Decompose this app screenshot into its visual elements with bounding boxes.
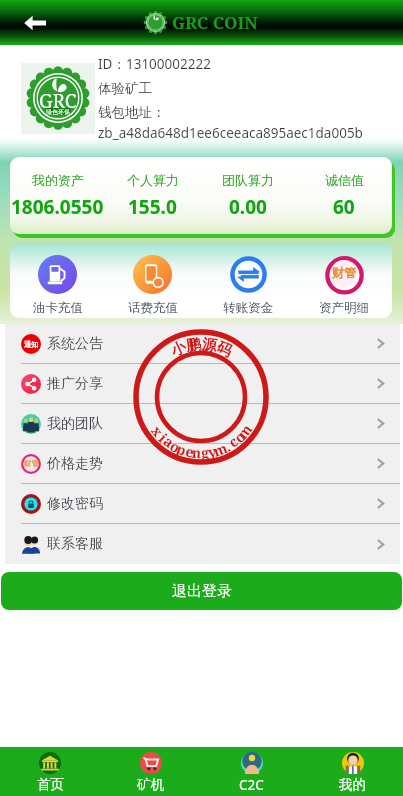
staticText: 我的 xyxy=(339,776,366,793)
staticText: 155.0 xyxy=(128,194,177,220)
staticText: 鹏 xyxy=(185,335,202,355)
staticText: ID：13100002222 xyxy=(98,55,211,73)
staticText: 转账资金 xyxy=(223,300,273,316)
staticText: zb_a48da648d1ee6ceeaca895aec1da005b xyxy=(98,124,363,141)
button[interactable]: Back xyxy=(18,6,52,40)
button[interactable]: 联系客服 xyxy=(5,524,400,564)
staticText: 油卡充值 xyxy=(33,300,83,316)
button[interactable]: 推广分享 xyxy=(5,364,400,404)
button[interactable]: 财管 xyxy=(5,444,400,484)
staticText: e xyxy=(184,441,197,461)
staticText: 码 xyxy=(214,338,235,361)
staticText: 资产明细 xyxy=(319,300,369,316)
button[interactable]: 退出登录 xyxy=(1,572,402,610)
staticText: 系统公告 xyxy=(47,335,103,353)
staticText: 推广分享 xyxy=(47,375,103,393)
staticText: c xyxy=(224,431,242,451)
staticText: 绿色环保 xyxy=(46,108,70,116)
staticText: 修改密码 xyxy=(47,495,103,513)
staticText: 60 xyxy=(333,194,355,220)
staticText: g xyxy=(200,443,210,461)
button[interactable]: 油卡充值 xyxy=(10,243,105,318)
staticText: o xyxy=(167,436,184,456)
staticText: 我的资产 xyxy=(32,172,84,188)
button[interactable]: 个人算力 xyxy=(105,157,200,234)
button[interactable]: 转账资金 xyxy=(200,243,296,318)
staticText: 话费充值 xyxy=(128,300,178,316)
staticText: 财管 xyxy=(332,265,356,280)
staticText: 联系客服 xyxy=(47,535,103,553)
button[interactable]: 我的资产 xyxy=(10,157,105,234)
staticText: x xyxy=(148,421,168,440)
staticText: 团队算力 xyxy=(222,172,274,188)
staticText: 个人算力 xyxy=(127,172,179,188)
staticText: 1806.0550 xyxy=(11,194,104,220)
button[interactable]: 我的团队 xyxy=(5,404,400,444)
staticText: i xyxy=(155,429,171,445)
staticText: a xyxy=(160,431,178,451)
staticText: p xyxy=(174,439,190,459)
button[interactable]: 财管 xyxy=(296,243,392,318)
staticText: . xyxy=(221,437,234,455)
button[interactable]: 话费充值 xyxy=(105,243,200,318)
staticText: 价格走势 xyxy=(47,455,103,473)
staticText: 通知 xyxy=(24,340,38,349)
staticText: 财管 xyxy=(24,459,39,468)
staticText: 诚信值 xyxy=(325,172,364,188)
button[interactable]: C2C xyxy=(201,747,302,796)
staticText: 小 xyxy=(168,337,189,360)
button[interactable]: 诚信值 xyxy=(296,157,392,234)
staticText: o xyxy=(230,427,249,446)
button[interactable]: 修改密码 xyxy=(5,484,400,524)
staticText: y xyxy=(206,441,219,461)
staticText: n xyxy=(191,443,203,461)
staticText: 我的团队 xyxy=(47,415,103,433)
button[interactable]: 矿机 xyxy=(100,747,201,796)
button[interactable]: 团队算力 xyxy=(200,157,296,234)
button[interactable]: 首页 xyxy=(0,747,100,796)
staticText: m xyxy=(233,420,255,442)
staticText: 源 xyxy=(201,335,218,355)
staticText: 矿机 xyxy=(137,776,164,793)
staticText: 首页 xyxy=(37,776,64,793)
staticText: 0.00 xyxy=(229,194,267,220)
staticText: GRC COIN xyxy=(172,11,258,34)
staticText: 钱包地址： xyxy=(98,104,166,121)
staticText: 体验矿工 xyxy=(98,80,152,97)
staticText: m xyxy=(210,438,230,460)
staticText: 退出登录 xyxy=(172,582,232,601)
button[interactable]: 通知 xyxy=(5,324,400,364)
staticText: GRC xyxy=(39,88,77,114)
staticText: C2C xyxy=(239,776,264,794)
button[interactable]: 我的 xyxy=(302,747,403,796)
